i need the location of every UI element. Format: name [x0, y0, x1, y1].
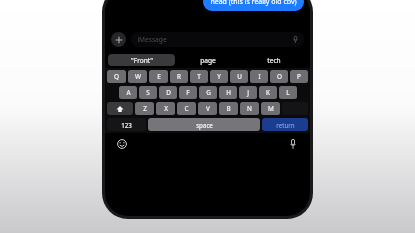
staticText: page — [200, 56, 216, 65]
button[interactable]: U — [230, 70, 248, 83]
staticText: B — [226, 104, 231, 113]
staticText: S — [146, 88, 150, 97]
button[interactable]: R — [170, 70, 188, 83]
button[interactable]: space — [148, 118, 260, 131]
staticText: G — [206, 88, 211, 97]
button[interactable]: 123 — [107, 118, 146, 131]
staticText: E — [157, 72, 161, 81]
button[interactable]: D — [159, 86, 177, 99]
button[interactable]: X — [156, 102, 175, 115]
button[interactable]: K — [259, 86, 277, 99]
staticText: R — [177, 72, 181, 81]
button[interactable]: W — [128, 70, 147, 83]
staticText: head (this is really old cbv) — [210, 0, 297, 7]
button[interactable]: H — [219, 86, 237, 99]
staticText: V — [206, 104, 210, 113]
staticText: space — [196, 121, 213, 129]
button[interactable]: Emoji keyboard — [115, 137, 129, 151]
staticText: U — [237, 72, 242, 81]
staticText: Q — [114, 72, 119, 81]
staticText: "Front" — [131, 56, 153, 65]
staticText: tech — [267, 56, 281, 65]
staticText: T — [197, 72, 201, 81]
staticText: P — [297, 72, 301, 81]
button[interactable]: B — [219, 102, 238, 115]
staticText: M — [268, 104, 274, 113]
button[interactable]: Add attachment — [111, 32, 126, 47]
staticText: N — [247, 104, 252, 113]
staticText: O — [277, 72, 282, 81]
button[interactable]: E — [149, 70, 168, 83]
button[interactable]: return — [262, 118, 308, 131]
button[interactable]: V — [198, 102, 217, 115]
button[interactable]: M — [261, 102, 280, 115]
button[interactable]: Shift — [107, 102, 133, 115]
button[interactable]: "Front" — [108, 54, 175, 66]
staticText: L — [286, 88, 290, 97]
button[interactable]: Dictation — [286, 137, 300, 151]
button[interactable]: C — [177, 102, 196, 115]
staticText: C — [184, 104, 189, 113]
button[interactable]: Y — [210, 70, 228, 83]
staticText: F — [186, 88, 190, 97]
button[interactable]: O — [270, 70, 288, 83]
staticText: return — [276, 121, 295, 129]
button[interactable]: I — [250, 70, 268, 83]
button[interactable]: page — [175, 52, 241, 68]
staticText: iMessage — [137, 35, 167, 44]
button[interactable]: G — [199, 86, 217, 99]
button[interactable]: N — [240, 102, 259, 115]
staticText: 123 — [121, 121, 132, 129]
staticText: Z — [143, 104, 147, 113]
staticText: K — [266, 88, 270, 97]
staticText: D — [166, 88, 171, 97]
button[interactable]: A — [119, 86, 137, 99]
button[interactable]: Z — [135, 102, 154, 115]
button[interactable]: L — [279, 86, 297, 99]
button[interactable]: Q — [107, 70, 126, 83]
staticText: J — [247, 88, 249, 97]
button[interactable]: tech — [241, 52, 307, 68]
staticText: H — [226, 88, 231, 97]
staticText: W — [135, 72, 141, 81]
staticText: X — [164, 104, 168, 113]
staticText: A — [126, 88, 131, 97]
button[interactable]: head (this is really old cbv) — [203, 0, 304, 11]
button[interactable]: F — [179, 86, 197, 99]
button[interactable]: T — [190, 70, 208, 83]
button[interactable]: S — [139, 86, 157, 99]
button[interactable]: iMessage — [131, 32, 304, 47]
staticText: I — [258, 72, 261, 81]
button[interactable]: P — [290, 70, 308, 83]
staticText: Y — [217, 72, 221, 81]
button[interactable]: J — [239, 86, 257, 99]
